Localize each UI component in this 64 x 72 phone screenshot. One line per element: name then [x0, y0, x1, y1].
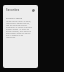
staticText: Lorem ipsum dolor sit amet, consectetur …: [6, 20, 33, 38]
button[interactable]: Search: [31, 8, 35, 12]
staticText: Favorites: [6, 8, 20, 12]
staticText: Recently added: [6, 17, 23, 20]
